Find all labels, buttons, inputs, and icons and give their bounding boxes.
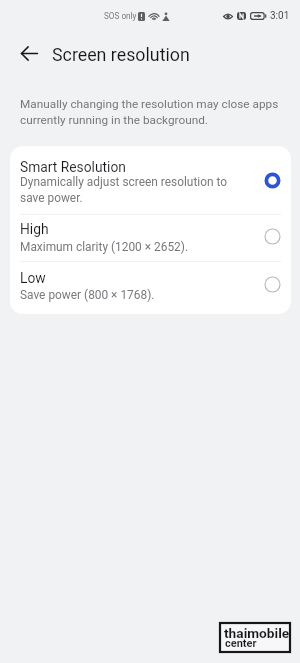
staticText: Dynamically adjust screen resolution to … (20, 175, 232, 205)
staticText: Smart Resolution (20, 159, 126, 175)
staticText: Maximum clarity (1200 × 2652). (20, 240, 189, 254)
staticText: Manually changing the resolution may clo… (20, 97, 284, 127)
staticText: center (225, 637, 257, 650)
staticText: 3:01 (270, 10, 290, 22)
button[interactable]: Low (10, 262, 291, 314)
button[interactable]: Smart Resolution (10, 146, 291, 214)
button[interactable]: Back (13, 37, 45, 69)
staticText: SOS only (104, 11, 137, 21)
staticText: Low (20, 270, 46, 286)
staticText: Save power (800 × 1768). (20, 288, 155, 302)
button[interactable]: High (10, 215, 291, 261)
staticText: Screen resolution (52, 44, 190, 65)
staticText: thaimobile (224, 625, 290, 641)
staticText: High (20, 221, 49, 237)
